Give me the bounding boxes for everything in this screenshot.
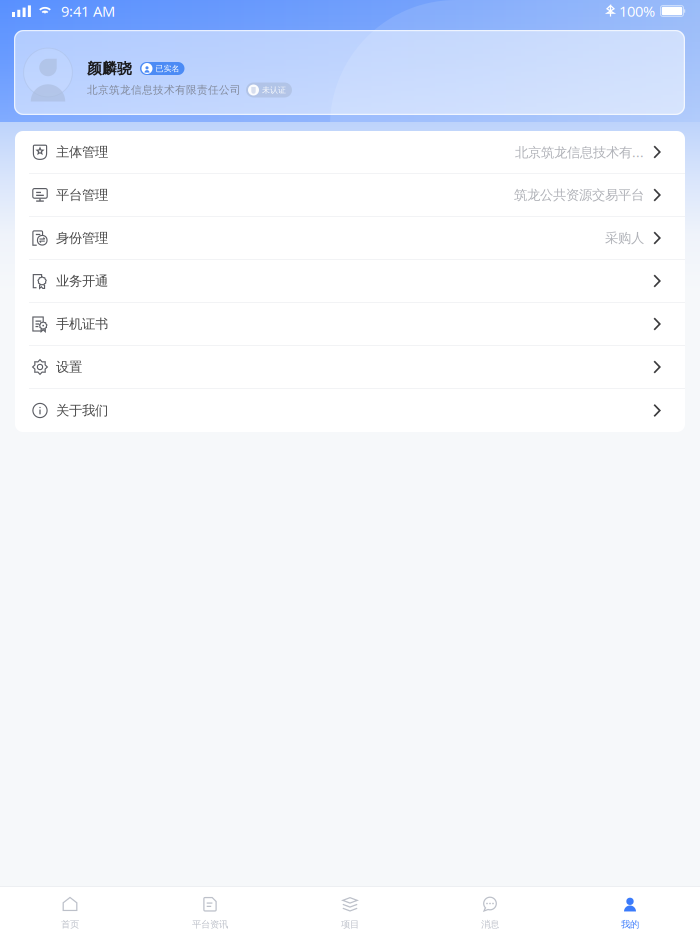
button[interactable]: 首页 bbox=[0, 887, 140, 934]
button[interactable]: 平台管理 bbox=[15, 174, 685, 217]
button[interactable]: 关于我们 bbox=[15, 389, 685, 432]
button[interactable]: 业务开通 bbox=[15, 260, 685, 303]
button[interactable]: 设置 bbox=[15, 346, 685, 389]
staticText: 主体管理 bbox=[56, 144, 108, 160]
staticText: 首页 bbox=[61, 919, 79, 930]
staticText: 平台资讯 bbox=[192, 919, 228, 930]
staticText: 业务开通 bbox=[56, 273, 108, 289]
button[interactable]: 消息 bbox=[420, 887, 560, 934]
button[interactable]: 平台资讯 bbox=[140, 887, 280, 934]
staticText: 关于我们 bbox=[56, 402, 108, 419]
staticText: 我的 bbox=[621, 919, 639, 930]
staticText: 平台管理 bbox=[56, 187, 108, 203]
staticText: 颜麟骁 bbox=[87, 59, 132, 77]
staticText: 北京筑龙信息技术有限责任公司 bbox=[87, 83, 241, 97]
staticText: 筑龙公共资源交易平台 bbox=[514, 187, 644, 203]
button[interactable]: 主体管理 bbox=[15, 131, 685, 174]
button[interactable]: 项目 bbox=[280, 887, 420, 934]
staticText: 未认证 bbox=[262, 85, 286, 95]
staticText: 9:41 AM bbox=[61, 1, 115, 21]
staticText: 手机证书 bbox=[56, 316, 108, 332]
staticText: 采购人 bbox=[605, 230, 644, 246]
staticText: 消息 bbox=[481, 919, 499, 930]
staticText: 设置 bbox=[56, 359, 82, 375]
staticText: 北京筑龙信息技术有... bbox=[515, 143, 644, 161]
staticText: 已实名 bbox=[155, 64, 179, 73]
button[interactable]: 我的 bbox=[560, 887, 700, 934]
staticText: 身份管理 bbox=[56, 230, 108, 246]
button[interactable]: 手机证书 bbox=[15, 303, 685, 346]
button[interactable]: 身份管理 bbox=[15, 217, 685, 260]
staticText: 100% bbox=[619, 1, 655, 21]
staticText: 项目 bbox=[341, 919, 359, 930]
